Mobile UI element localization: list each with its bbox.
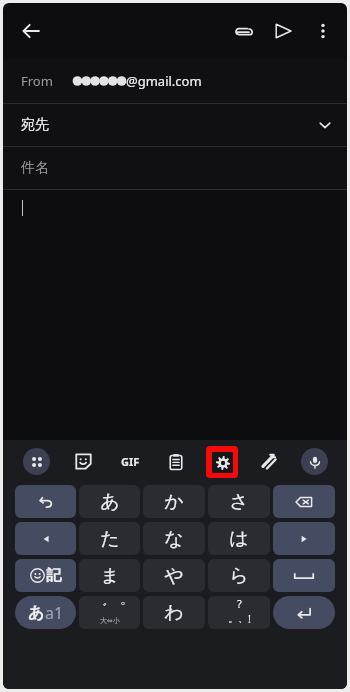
button[interactable]: あ <box>79 485 140 518</box>
button[interactable]: Delete <box>273 485 335 518</box>
button[interactable]: ら <box>208 559 270 592</box>
button[interactable]: 件名 <box>3 147 347 189</box>
button[interactable]: Space <box>273 559 335 592</box>
button[interactable]: Dakuten <box>79 596 140 629</box>
staticText: ま <box>100 564 120 588</box>
staticText: 宛先 <box>21 116 49 134</box>
button[interactable]: さ <box>208 485 270 518</box>
button[interactable]: Undo <box>15 485 76 518</box>
button[interactable]: 記 <box>15 559 76 592</box>
staticText: た <box>100 527 120 551</box>
staticText: や <box>164 564 184 588</box>
staticText: 記 <box>46 566 61 585</box>
staticText: ゜ <box>112 600 126 616</box>
button[interactable]: あ <box>15 596 76 629</box>
button[interactable]: Clipboard <box>153 440 199 483</box>
button[interactable]: Voice input <box>291 440 337 483</box>
button[interactable]: は <box>208 522 270 555</box>
staticText: ら <box>229 564 249 588</box>
staticText: @gmail.com <box>126 72 202 90</box>
button[interactable]: た <box>79 522 140 555</box>
button[interactable]: か <box>143 485 205 518</box>
button[interactable]: Stickers <box>60 440 107 483</box>
button[interactable]: な <box>143 522 205 555</box>
button[interactable]: From <box>3 59 347 103</box>
staticText: ! <box>248 611 251 626</box>
staticText: 、 <box>238 612 248 625</box>
button[interactable]: Send <box>263 11 303 51</box>
button[interactable]: Cursor left <box>15 522 76 555</box>
button[interactable]: や <box>143 559 205 592</box>
staticText: あ <box>100 490 120 514</box>
staticText: あ <box>28 603 45 623</box>
button[interactable]: Settings <box>199 440 245 483</box>
staticText: わ <box>164 601 184 625</box>
button[interactable]: Enter <box>273 596 335 629</box>
staticText: From <box>21 72 53 90</box>
button[interactable]: Punctuation <box>208 596 270 629</box>
button[interactable]: ま <box>79 559 140 592</box>
button[interactable]: Cursor right <box>273 522 335 555</box>
staticText: な <box>164 527 184 551</box>
button[interactable]: Apps <box>13 440 60 483</box>
button[interactable]: More options <box>303 11 343 51</box>
staticText: GIF <box>121 454 140 469</box>
button[interactable]: Handwriting <box>245 440 291 483</box>
staticText: 。 <box>228 612 238 625</box>
button[interactable]: Attach <box>223 11 263 51</box>
button[interactable]: わ <box>143 596 205 629</box>
staticText: さ <box>229 490 249 514</box>
staticText: 件名 <box>21 159 49 177</box>
button[interactable]: Back <box>11 11 51 51</box>
staticText: は <box>229 527 249 551</box>
staticText: か <box>164 490 184 514</box>
staticText: ゛ <box>94 600 108 616</box>
staticText: ? <box>237 596 242 611</box>
staticText: a1 <box>45 602 64 624</box>
staticText: 大⇔小 <box>100 616 120 625</box>
button[interactable]: GIF <box>107 440 153 483</box>
button[interactable]: 宛先 <box>3 104 347 146</box>
